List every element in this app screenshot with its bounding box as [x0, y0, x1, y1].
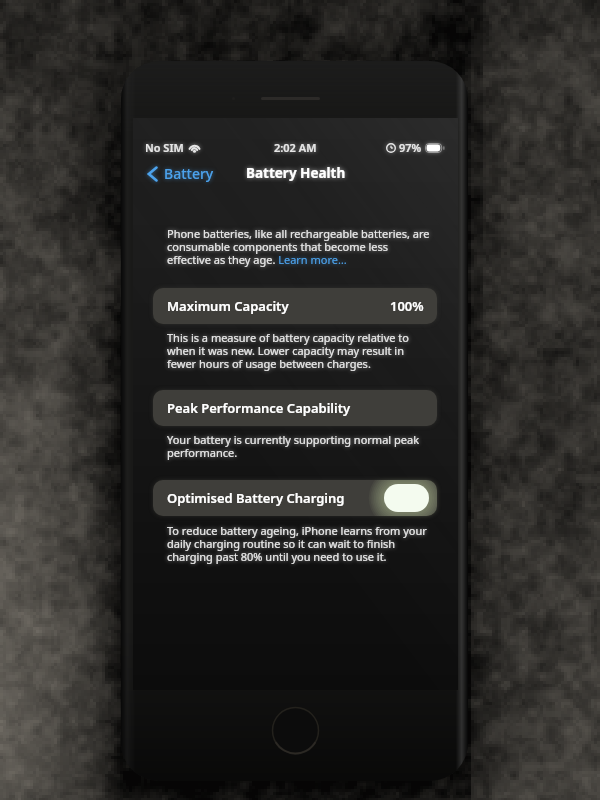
staticText: To reduce battery ageing, iPhone learns … [167, 523, 432, 565]
button[interactable]: Battery [145, 164, 214, 183]
staticText: Battery Health [246, 164, 346, 182]
staticText: No SIM [145, 140, 184, 155]
staticText: Optimised Battery Charging [167, 489, 345, 507]
button[interactable]: Maximum Capacity [153, 288, 437, 324]
staticText: Your battery is currently supporting nor… [167, 432, 432, 461]
staticText: Peak Performance Capability [167, 399, 351, 417]
staticText: Optimised Battery Charging [167, 489, 345, 507]
staticText: Your battery is currently supporting nor… [167, 432, 432, 461]
staticText: 100% [390, 297, 424, 315]
button[interactable]: Peak Performance Capability [153, 390, 437, 426]
staticText: 2:02 AM [274, 140, 317, 155]
button[interactable]: Optimised Battery Charging toggle, on [384, 484, 429, 512]
staticText: Phone batteries, like all rechargeable b… [167, 226, 432, 268]
staticText: Battery Health [246, 164, 346, 182]
staticText: Peak Performance Capability [167, 399, 351, 417]
staticText: No SIM [145, 140, 184, 155]
staticText: 100% [390, 297, 424, 315]
staticText: This is a measure of battery capacity re… [167, 330, 432, 372]
button[interactable]: Peak Performance Capability [153, 390, 437, 426]
button[interactable]: Optimised Battery Charging [153, 480, 437, 516]
button[interactable]: Optimised Battery Charging [153, 480, 437, 516]
staticText: Phone batteries, like all rechargeable b… [167, 226, 432, 268]
staticText: 2:02 AM [274, 140, 317, 155]
staticText: To reduce battery ageing, iPhone learns … [167, 523, 432, 565]
staticText: 97% [399, 140, 422, 155]
staticText: Battery [164, 164, 214, 183]
staticText: Maximum Capacity [167, 297, 289, 315]
staticText: 97% [399, 140, 422, 155]
staticText: Phone batteries, like all rechargeable b… [167, 226, 432, 268]
button[interactable]: Optimised Battery Charging toggle, on [384, 484, 429, 512]
staticText: Maximum Capacity [167, 297, 289, 315]
staticText: Phone batteries, like all rechargeable b… [167, 226, 432, 268]
button[interactable]: Maximum Capacity [153, 288, 437, 324]
staticText: This is a measure of battery capacity re… [167, 330, 432, 372]
staticText: Battery [164, 164, 214, 183]
button[interactable]: Battery [145, 164, 214, 183]
